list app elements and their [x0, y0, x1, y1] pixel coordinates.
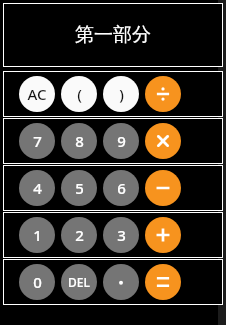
button[interactable]: 6	[103, 170, 139, 206]
button[interactable]: Divide	[145, 76, 181, 112]
staticText: 1	[33, 225, 42, 245]
button[interactable]: DEL	[61, 264, 97, 300]
button[interactable]: 1	[19, 217, 55, 253]
button[interactable]: (	[61, 76, 97, 112]
staticText: AC	[27, 84, 47, 104]
button[interactable]: Decimal point	[103, 264, 139, 300]
button[interactable]: Equals	[145, 264, 181, 300]
staticText: 0	[33, 272, 42, 292]
staticText: (	[77, 84, 82, 104]
button[interactable]: 5	[61, 170, 97, 206]
button[interactable]: AC	[19, 76, 55, 112]
button[interactable]: 2	[61, 217, 97, 253]
staticText: 第一部分	[75, 23, 151, 47]
button[interactable]: 第一部分	[3, 3, 223, 67]
staticText: 7	[33, 131, 42, 151]
button[interactable]: 0	[19, 264, 55, 300]
staticText: 4	[33, 178, 42, 198]
staticText: )	[119, 84, 124, 104]
staticText: DEL	[68, 274, 90, 290]
button[interactable]: 7	[19, 123, 55, 159]
staticText: 9	[117, 131, 126, 151]
button[interactable]: 3	[103, 217, 139, 253]
staticText: 8	[75, 131, 84, 151]
staticText: 3	[117, 225, 126, 245]
button[interactable]: Multiply	[145, 123, 181, 159]
button[interactable]: Plus	[145, 217, 181, 253]
staticText: 5	[75, 178, 84, 198]
button[interactable]: 9	[103, 123, 139, 159]
button[interactable]: 4	[19, 170, 55, 206]
button[interactable]: 8	[61, 123, 97, 159]
staticText: 2	[75, 225, 84, 245]
button[interactable]: Minus	[145, 170, 181, 206]
button[interactable]: )	[103, 76, 139, 112]
staticText: 6	[117, 178, 126, 198]
